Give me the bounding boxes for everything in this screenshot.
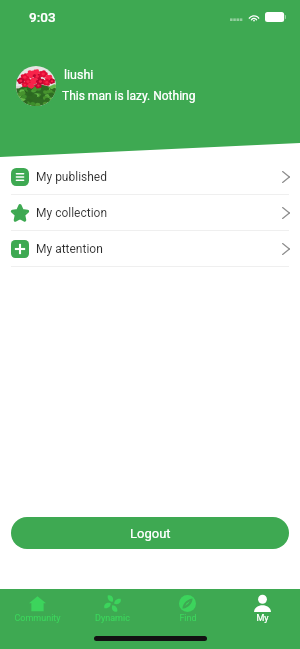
button[interactable]: Community [0,595,75,628]
staticText: Community [14,613,61,624]
button[interactable]: Find [150,595,225,628]
staticText: This man is lazy. Nothing [62,89,196,103]
button[interactable]: My [225,595,300,628]
button[interactable]: Logout [11,517,289,549]
button[interactable]: My collection [0,195,300,231]
button[interactable]: Dynamic [75,595,150,628]
staticText: 9:03 [29,9,56,25]
staticText: Logout [130,526,171,541]
staticText: My published [36,170,107,184]
button[interactable]: My attention [0,231,300,267]
staticText: My collection [36,206,108,220]
button[interactable]: My published [0,159,300,195]
staticText: My attention [36,242,103,256]
staticText: Find [179,613,197,624]
staticText: My [256,613,269,624]
staticText: liushi [64,67,94,82]
staticText: Dynamic [95,613,130,624]
